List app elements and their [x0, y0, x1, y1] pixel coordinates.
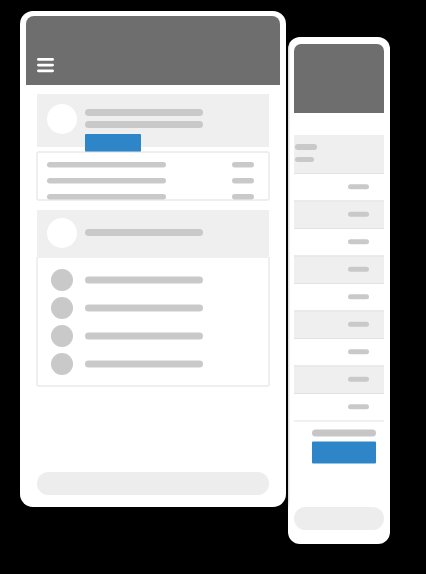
- button[interactable]: Open navigation menu: [33, 52, 59, 74]
- button[interactable]: Submit: [311, 487, 383, 509]
- button[interactable]: Primary action: [85, 134, 141, 152]
